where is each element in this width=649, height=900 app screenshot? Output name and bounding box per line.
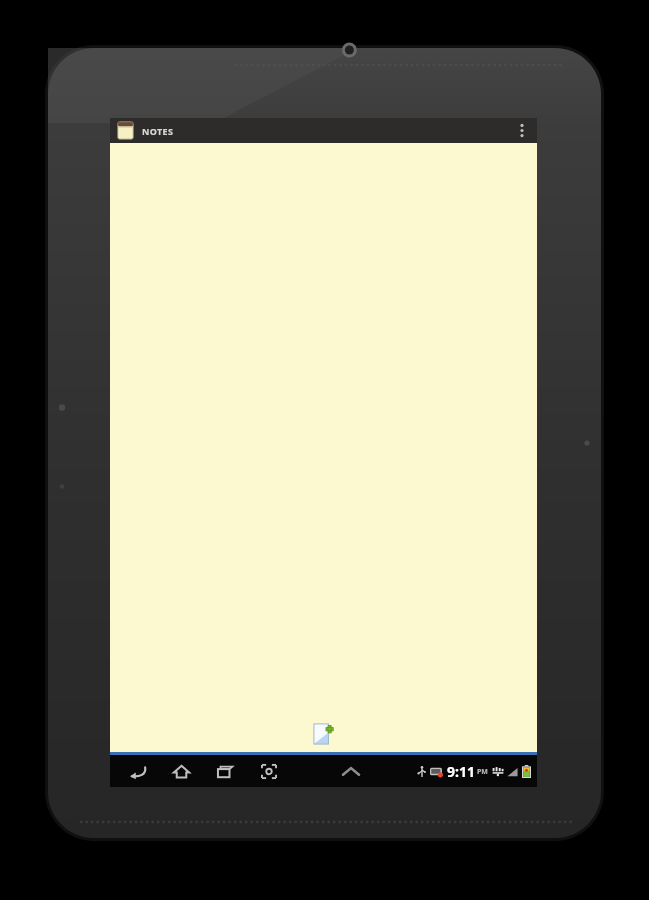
button[interactable]: More options (507, 118, 537, 143)
button[interactable]: Show notifications (334, 756, 368, 786)
button[interactable]: New note (308, 718, 340, 750)
button[interactable]: Screenshot (254, 756, 284, 786)
button[interactable]: Recent apps (210, 756, 240, 786)
staticText: PM (477, 767, 488, 777)
button[interactable]: Home (166, 756, 196, 786)
staticText: 9:11 (447, 762, 475, 781)
staticText: NOTES (142, 125, 174, 137)
button[interactable]: Back (122, 756, 152, 786)
